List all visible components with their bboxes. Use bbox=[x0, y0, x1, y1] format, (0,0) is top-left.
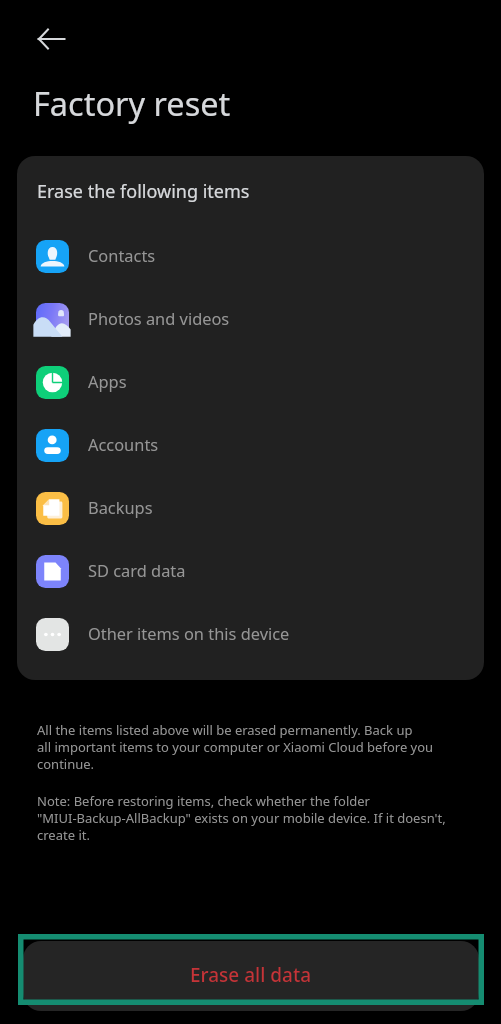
button[interactable]: Other items on this device bbox=[17, 603, 484, 666]
staticText: Erase all data bbox=[190, 962, 312, 988]
staticText: Apps bbox=[88, 370, 127, 392]
button[interactable]: Photos and videos bbox=[17, 288, 484, 351]
button[interactable]: Apps bbox=[17, 351, 484, 414]
button[interactable]: Erase all data bbox=[23, 941, 479, 1011]
staticText: Contacts bbox=[88, 244, 156, 266]
staticText: Photos and videos bbox=[88, 307, 230, 329]
button[interactable]: Back bbox=[29, 17, 73, 61]
staticText: SD card data bbox=[88, 559, 186, 581]
button[interactable]: SD card data bbox=[17, 540, 484, 603]
staticText: Accounts bbox=[88, 433, 159, 455]
button[interactable]: Backups bbox=[17, 477, 484, 540]
button[interactable]: Accounts bbox=[17, 414, 484, 477]
staticText: Backups bbox=[88, 496, 153, 518]
staticText: Note: Before restoring items, check whet… bbox=[37, 792, 446, 844]
button[interactable]: Contacts bbox=[17, 225, 484, 288]
staticText: Factory reset bbox=[33, 81, 231, 125]
staticText: Other items on this device bbox=[88, 622, 290, 644]
staticText: All the items listed above will be erase… bbox=[37, 721, 434, 773]
staticText: Erase the following items bbox=[37, 179, 250, 204]
